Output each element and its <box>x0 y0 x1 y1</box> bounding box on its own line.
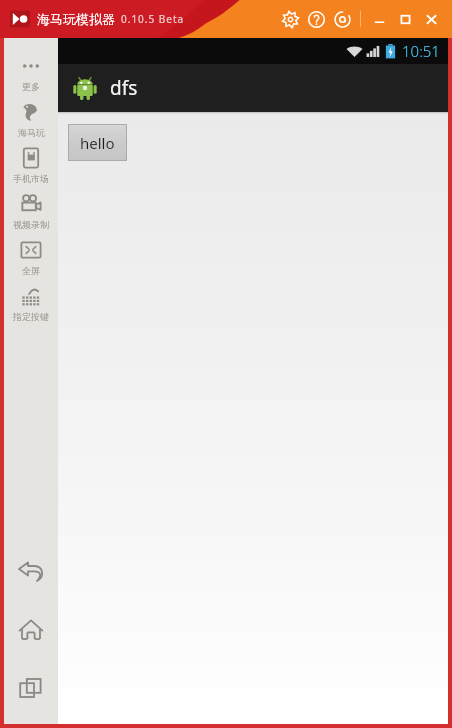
staticText: hello <box>80 133 115 153</box>
button[interactable]: App icon <box>70 73 100 103</box>
staticText: 手机市场 <box>13 173 49 184</box>
staticText: dfs <box>110 75 138 101</box>
button[interactable]: 全屏 <box>4 232 58 278</box>
button[interactable]: 更多 <box>4 48 58 94</box>
staticText: 视频录制 <box>13 219 49 230</box>
button[interactable]: Account <box>329 6 355 32</box>
button[interactable]: 指定按键 <box>4 278 58 324</box>
button[interactable]: Home <box>9 608 53 652</box>
staticText: 全屏 <box>22 265 40 276</box>
button[interactable]: Recents <box>9 666 53 710</box>
button[interactable]: Close <box>418 6 444 32</box>
button[interactable]: Help <box>303 6 329 32</box>
staticText: 海马玩模拟器 <box>37 11 115 27</box>
staticText: 10:51 <box>402 41 440 61</box>
staticText: 海马玩 <box>18 127 45 138</box>
button[interactable]: hello <box>68 124 127 161</box>
staticText: 0.10.5 Beta <box>121 12 185 26</box>
button[interactable]: 手机市场 <box>4 140 58 186</box>
button[interactable]: 视频录制 <box>4 186 58 232</box>
button[interactable]: Minimize <box>366 6 392 32</box>
button[interactable]: 海马玩 <box>4 94 58 140</box>
button[interactable]: Maximize <box>392 6 418 32</box>
staticText: 更多 <box>22 81 40 92</box>
staticText: 指定按键 <box>13 311 49 322</box>
button[interactable]: Back <box>9 550 53 594</box>
button[interactable]: Settings <box>277 6 303 32</box>
